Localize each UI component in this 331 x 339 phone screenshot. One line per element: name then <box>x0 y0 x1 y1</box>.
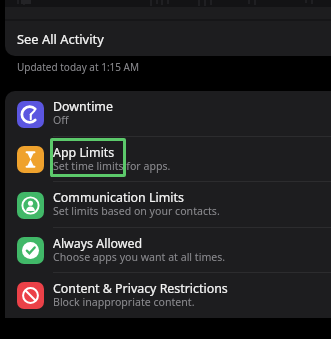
staticText: Content & Privacy Restrictions <box>53 280 228 297</box>
staticText: Block inappropriate content. <box>53 295 195 309</box>
button[interactable]: Communication Limits <box>5 182 331 228</box>
staticText: See All Activity <box>17 30 104 48</box>
button[interactable]: See All Activity <box>5 21 331 56</box>
button[interactable]: Always Allowed <box>5 228 331 273</box>
staticText: Set limits based on your contacts. <box>53 204 220 218</box>
button[interactable]: App Limits <box>5 137 331 182</box>
staticText: Always Allowed <box>53 235 143 252</box>
staticText: Set time limits for apps. <box>53 159 171 173</box>
staticText: Updated today at 1:15 AM <box>17 60 140 74</box>
staticText: Downtime <box>53 98 113 115</box>
staticText: Choose apps you want at all times. <box>53 250 226 264</box>
staticText: Communication Limits <box>53 189 184 206</box>
staticText: App Limits <box>53 144 115 161</box>
staticText: Off <box>53 113 69 127</box>
button[interactable]: Downtime <box>5 91 331 137</box>
button[interactable]: Content & Privacy Restrictions <box>5 273 331 318</box>
